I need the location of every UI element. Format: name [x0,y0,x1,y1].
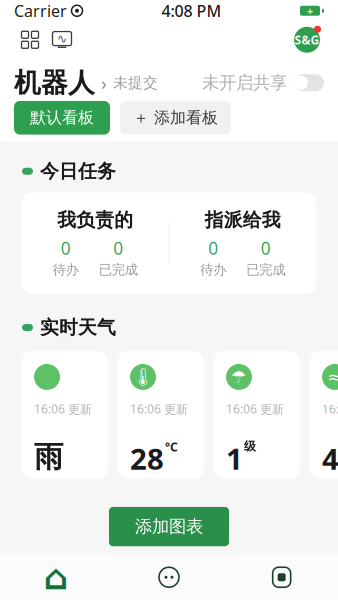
staticText: 16:06 更新 [34,401,92,417]
staticText: 0 [261,237,271,260]
button[interactable]: 大屏 [46,24,78,56]
button[interactable]: ＋ 添加看板 [120,101,231,135]
staticText: 28 [130,439,164,478]
staticText: Carrier [14,0,67,21]
staticText: 默认看板 [30,108,94,128]
button[interactable]: 默认看板 [14,101,110,135]
staticText: 未开启共享 [202,72,287,93]
staticText: 级 [244,439,256,454]
staticText: 添加图表 [135,516,203,537]
staticText: 已完成 [99,262,138,278]
staticText: 实时天气 [40,316,116,339]
staticText: 0 [61,237,71,260]
staticText: › [101,70,107,95]
button[interactable]: 添加图表 [109,507,229,546]
staticText: 我负责的 [57,209,133,232]
staticText: 🌡 [132,367,154,387]
staticText: 16:06 更新 [226,401,284,417]
staticText: 指派给我 [205,209,281,232]
button[interactable]: 我的 [225,555,338,599]
staticText: 4 [322,439,338,478]
button[interactable]: ☂ [214,351,300,479]
staticText: 今日任务 [40,160,116,183]
staticText: + [307,4,313,18]
staticText: 0 [113,237,123,260]
button[interactable]: 共享开关 [202,72,324,93]
staticText: 16:06 更新 [322,401,338,417]
button[interactable]: ≈ [310,351,338,479]
staticText: 机器人 [14,66,95,99]
staticText: 雨 [34,439,63,475]
button[interactable]: 16:06 更新 [22,351,108,479]
staticText: 未提交 [113,74,158,92]
staticText: ≈ [327,367,338,387]
staticText: S&G [294,32,319,48]
staticText: 4:08 PM [161,0,221,21]
staticText: 待办 [53,262,79,278]
staticText: ☂ [231,367,247,387]
staticText: 0 [208,237,218,260]
button[interactable]: 看板 [14,24,46,56]
button[interactable]: 🌡 [118,351,204,479]
staticText: 1 [226,439,243,478]
button[interactable]: 机器人 [14,66,158,99]
button[interactable]: 个人中心 [290,23,324,57]
staticText: 已完成 [246,262,285,278]
staticText: ⌂ [44,558,69,597]
staticText: °C [165,439,178,455]
button[interactable]: 消息 [113,555,225,599]
staticText: 待办 [200,262,226,278]
staticText: ＋ 添加看板 [133,108,218,128]
staticText: ∿ [57,32,67,45]
button[interactable]: 我负责的 [22,193,316,294]
button[interactable]: 首页 [0,555,113,599]
staticText: 16:06 更新 [130,401,188,417]
